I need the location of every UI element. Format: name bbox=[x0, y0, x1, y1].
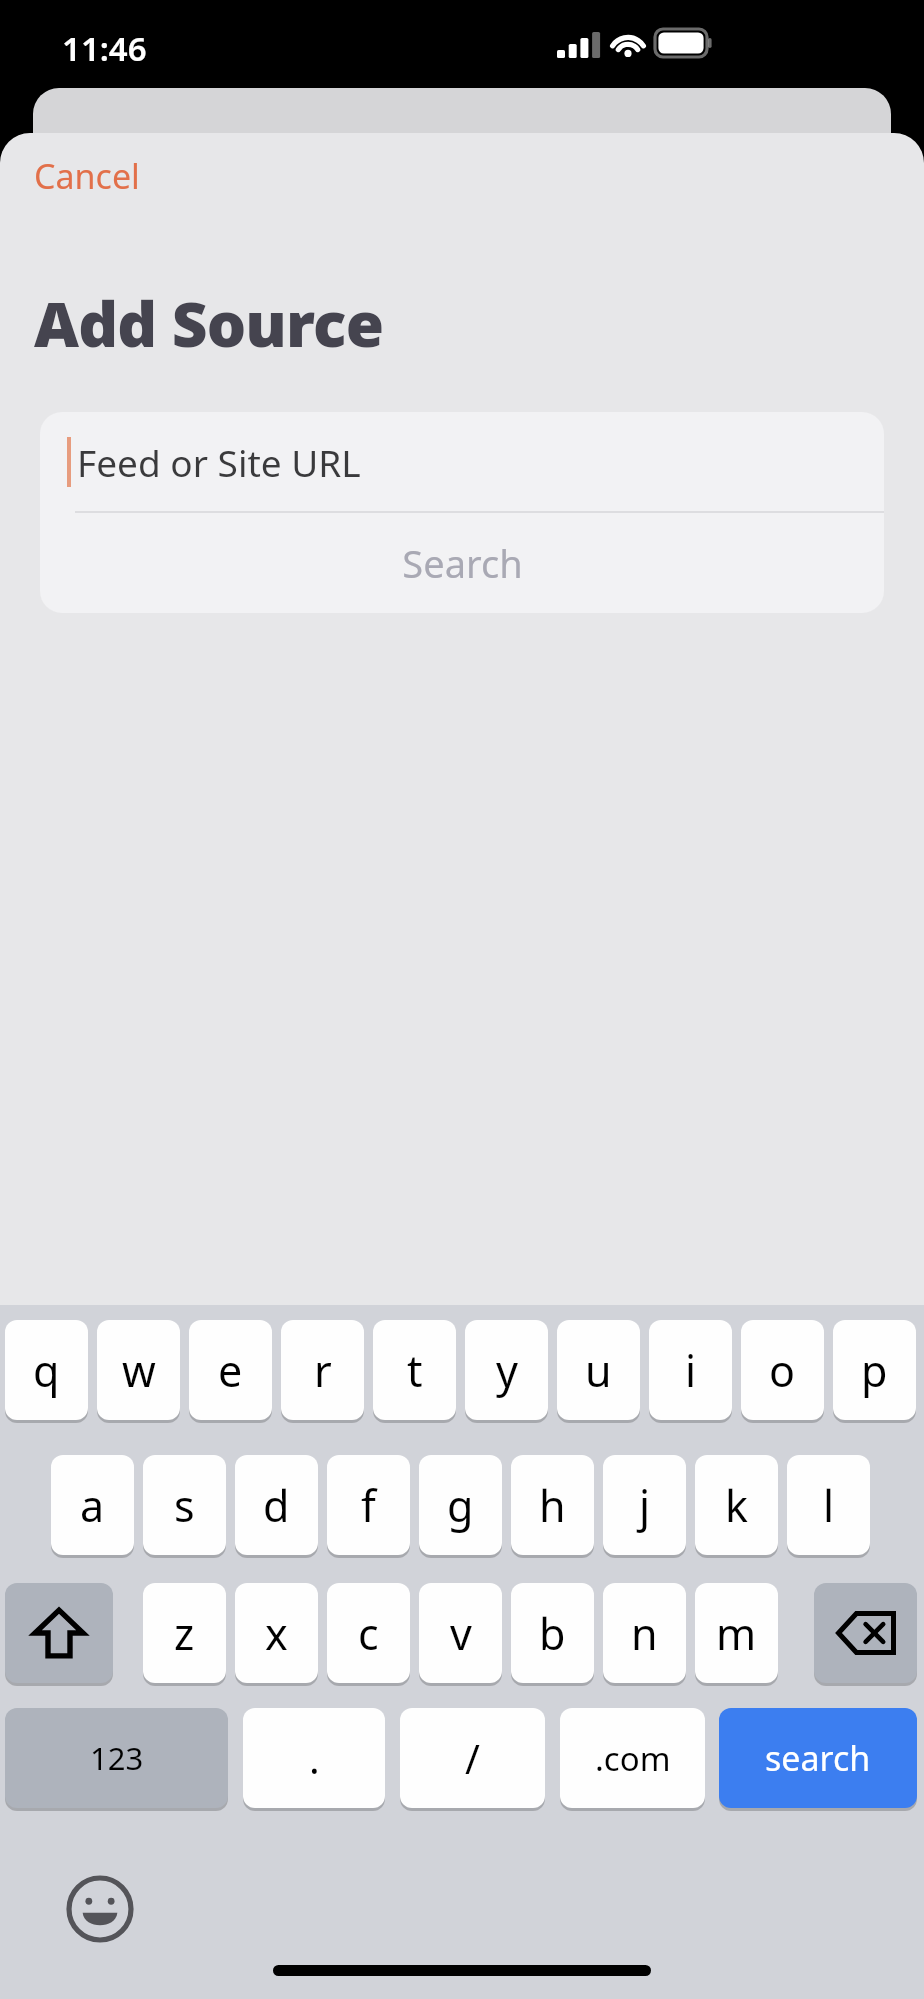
staticText: search bbox=[765, 1735, 871, 1781]
staticText: m bbox=[716, 1604, 757, 1663]
button[interactable]: k bbox=[695, 1455, 778, 1555]
button[interactable]: f bbox=[327, 1455, 410, 1555]
staticText: 11:46 bbox=[62, 26, 147, 71]
staticText: Cancel bbox=[34, 153, 140, 199]
button[interactable]: Emoji keyboard bbox=[63, 1872, 137, 1946]
button[interactable]: r bbox=[281, 1320, 364, 1420]
button[interactable]: 123 bbox=[5, 1708, 228, 1808]
staticText: r bbox=[314, 1341, 332, 1400]
staticText: 123 bbox=[90, 1737, 144, 1779]
staticText: k bbox=[725, 1476, 748, 1535]
staticText: s bbox=[174, 1476, 195, 1535]
staticText: Feed or Site URL bbox=[77, 437, 361, 487]
staticText: q bbox=[33, 1341, 60, 1400]
staticText: . bbox=[309, 1731, 320, 1785]
staticText: g bbox=[447, 1476, 474, 1535]
staticText: w bbox=[122, 1341, 156, 1400]
button[interactable]: Backspace bbox=[814, 1583, 917, 1683]
button[interactable]: x bbox=[235, 1583, 318, 1683]
button[interactable]: s bbox=[143, 1455, 226, 1555]
button[interactable]: Shift bbox=[5, 1583, 113, 1683]
staticText: y bbox=[496, 1341, 518, 1400]
button[interactable]: m bbox=[695, 1583, 778, 1683]
button[interactable]: Feed or Site URL bbox=[40, 412, 884, 512]
button[interactable]: i bbox=[649, 1320, 732, 1420]
button[interactable]: e bbox=[189, 1320, 272, 1420]
staticText: e bbox=[218, 1341, 243, 1400]
button[interactable]: h bbox=[511, 1455, 594, 1555]
button[interactable]: search bbox=[719, 1708, 917, 1808]
staticText: b bbox=[539, 1604, 566, 1663]
staticText: Search bbox=[402, 537, 523, 589]
staticText: n bbox=[631, 1604, 658, 1663]
button[interactable]: . bbox=[243, 1708, 385, 1808]
button[interactable]: Search bbox=[40, 513, 884, 613]
button[interactable]: a bbox=[51, 1455, 134, 1555]
button[interactable]: g bbox=[419, 1455, 502, 1555]
staticText: d bbox=[263, 1476, 290, 1535]
staticText: t bbox=[407, 1341, 423, 1400]
button[interactable]: v bbox=[419, 1583, 502, 1683]
button[interactable]: p bbox=[833, 1320, 916, 1420]
button[interactable]: Cancel bbox=[16, 141, 158, 211]
staticText: o bbox=[769, 1341, 796, 1400]
button[interactable]: o bbox=[741, 1320, 824, 1420]
button[interactable]: y bbox=[465, 1320, 548, 1420]
staticText: l bbox=[823, 1476, 835, 1535]
staticText: .com bbox=[595, 1736, 671, 1781]
staticText: u bbox=[585, 1341, 612, 1400]
button[interactable]: .com bbox=[560, 1708, 705, 1808]
button[interactable]: t bbox=[373, 1320, 456, 1420]
staticText: p bbox=[861, 1341, 888, 1400]
staticText: z bbox=[174, 1604, 195, 1663]
button[interactable]: u bbox=[557, 1320, 640, 1420]
staticText: f bbox=[361, 1476, 376, 1535]
staticText: x bbox=[265, 1604, 288, 1663]
button[interactable]: l bbox=[787, 1455, 870, 1555]
staticText: v bbox=[450, 1604, 472, 1663]
staticText: Add Source bbox=[34, 281, 384, 365]
staticText: c bbox=[358, 1604, 379, 1663]
button[interactable]: j bbox=[603, 1455, 686, 1555]
button[interactable]: z bbox=[143, 1583, 226, 1683]
staticText: h bbox=[539, 1476, 566, 1535]
staticText: i bbox=[685, 1341, 697, 1400]
staticText: / bbox=[465, 1731, 480, 1785]
button[interactable]: n bbox=[603, 1583, 686, 1683]
staticText: a bbox=[80, 1476, 105, 1535]
button[interactable]: w bbox=[97, 1320, 180, 1420]
button[interactable]: b bbox=[511, 1583, 594, 1683]
button[interactable]: c bbox=[327, 1583, 410, 1683]
button[interactable]: q bbox=[5, 1320, 88, 1420]
staticText: j bbox=[639, 1476, 651, 1535]
button[interactable]: / bbox=[400, 1708, 545, 1808]
button[interactable]: d bbox=[235, 1455, 318, 1555]
